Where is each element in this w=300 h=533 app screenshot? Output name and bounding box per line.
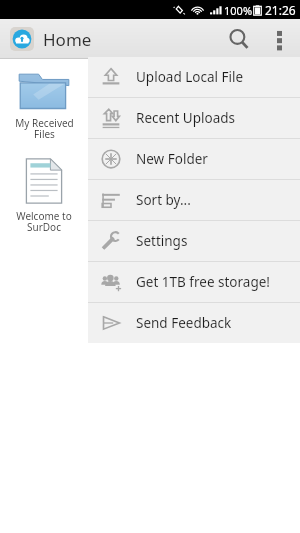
button[interactable]: Upload Local File [88, 57, 300, 97]
button[interactable]: Recent Uploads [88, 98, 300, 138]
button[interactable]: More options [262, 22, 296, 56]
staticText: Send Feedback [136, 314, 232, 332]
button[interactable]: Send Feedback [88, 303, 300, 343]
staticText: 100% [224, 3, 253, 18]
staticText: Settings [136, 232, 188, 250]
button[interactable]: Search [216, 19, 262, 59]
button[interactable]: New Folder [88, 139, 300, 179]
staticText: Sort by... [136, 191, 191, 209]
button[interactable]: Welcome to SurDoc [0, 153, 88, 238]
button[interactable]: Sort by... [88, 180, 300, 220]
staticText: Home [43, 28, 92, 51]
staticText: Welcome to SurDoc [16, 209, 72, 234]
button[interactable]: My Received Files [0, 64, 88, 145]
staticText: Recent Uploads [136, 109, 235, 127]
staticText: Upload Local File [136, 68, 244, 86]
staticText: My Received Files [15, 116, 74, 141]
staticText: Get 1TB free storage! [136, 273, 270, 291]
button[interactable]: Get 1TB free storage! [88, 262, 300, 302]
staticText: New Folder [136, 150, 208, 168]
button[interactable]: Settings [88, 221, 300, 261]
staticText: 21:26 [265, 2, 296, 18]
